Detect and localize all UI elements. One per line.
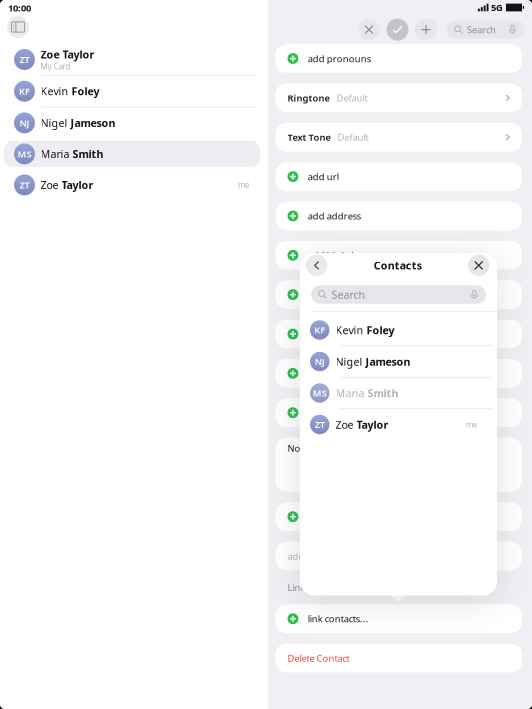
staticText: NJ bbox=[19, 117, 29, 129]
staticText: Zoe Taylor bbox=[40, 47, 94, 62]
button[interactable]: KF bbox=[0, 76, 264, 107]
staticText: add to emergency contacts bbox=[287, 550, 403, 562]
staticText: MS bbox=[17, 148, 31, 160]
button[interactable]: add birthday bbox=[275, 241, 522, 270]
button[interactable]: add social profile bbox=[275, 359, 522, 388]
button[interactable]: add url bbox=[275, 162, 522, 191]
staticText: Kevin Foley bbox=[40, 84, 99, 98]
staticText: add instant message bbox=[308, 406, 396, 419]
staticText: My Card bbox=[40, 61, 70, 72]
button[interactable]: add instant message bbox=[275, 398, 522, 427]
staticText: Zoe Taylor bbox=[335, 417, 388, 432]
button[interactable]: add to emergency contacts bbox=[275, 542, 522, 570]
staticText: ZT bbox=[315, 418, 325, 431]
staticText: Search bbox=[467, 23, 496, 36]
button[interactable]: Back bbox=[306, 255, 327, 276]
staticText: NJ bbox=[315, 355, 325, 368]
button[interactable]: Text Tone bbox=[275, 123, 522, 152]
button[interactable]: KF bbox=[300, 315, 497, 345]
staticText: 10:00 bbox=[8, 2, 31, 14]
staticText: Contacts bbox=[374, 258, 422, 272]
button[interactable]: MS bbox=[0, 138, 264, 169]
staticText: Nigel Jameson bbox=[335, 354, 410, 369]
button[interactable]: Ringtone bbox=[275, 84, 522, 112]
button[interactable]: Delete Contact bbox=[275, 644, 522, 672]
staticText: Nigel Jameson bbox=[40, 116, 115, 130]
staticText: 5G bbox=[491, 1, 503, 14]
button[interactable]: Search bbox=[446, 21, 525, 39]
button[interactable]: ZT bbox=[300, 409, 497, 440]
staticText: add birthday bbox=[308, 249, 364, 261]
button[interactable]: link contacts... bbox=[275, 604, 522, 633]
button[interactable]: NJ bbox=[0, 107, 264, 138]
button[interactable]: MS bbox=[300, 378, 497, 408]
staticText: Notes bbox=[287, 442, 312, 454]
staticText: add pronouns bbox=[308, 52, 371, 65]
button[interactable]: NJ bbox=[300, 346, 497, 377]
staticText: Maria Smith bbox=[335, 386, 398, 400]
staticText: add address bbox=[308, 210, 361, 222]
staticText: me bbox=[238, 180, 250, 190]
staticText: me bbox=[466, 419, 478, 430]
button[interactable]: Show sidebar bbox=[7, 16, 29, 38]
staticText: ZT bbox=[19, 53, 29, 66]
button[interactable]: Cancel bbox=[358, 19, 380, 41]
staticText: Delete Contact bbox=[287, 652, 349, 664]
staticText: Default bbox=[337, 131, 368, 143]
staticText: Linked Contacts bbox=[287, 581, 355, 594]
staticText: add url bbox=[308, 170, 339, 183]
staticText: Ringtone bbox=[287, 92, 329, 104]
button[interactable]: add field bbox=[275, 502, 522, 531]
staticText: add date bbox=[308, 288, 346, 301]
button[interactable]: Search bbox=[311, 285, 486, 304]
staticText: add related name bbox=[308, 328, 384, 340]
button[interactable]: Done bbox=[386, 19, 408, 41]
button[interactable]: add date bbox=[275, 280, 522, 309]
staticText: KF bbox=[314, 324, 325, 336]
button[interactable]: add address bbox=[275, 202, 522, 230]
staticText: link contacts... bbox=[308, 613, 369, 625]
button[interactable]: Add bbox=[415, 19, 437, 41]
staticText: ZT bbox=[19, 179, 29, 191]
button[interactable]: add related name bbox=[275, 320, 522, 348]
staticText: Kevin Foley bbox=[335, 323, 394, 337]
button[interactable]: Close bbox=[468, 255, 489, 276]
button[interactable]: ZT bbox=[0, 169, 264, 200]
button[interactable]: ZT bbox=[0, 44, 264, 75]
staticText: MS bbox=[313, 387, 327, 399]
staticText: KF bbox=[19, 85, 30, 97]
staticText: Text Tone bbox=[287, 131, 330, 143]
button[interactable]: Notes bbox=[275, 438, 522, 492]
staticText: Zoe Taylor bbox=[40, 178, 93, 192]
staticText: Search bbox=[331, 287, 365, 302]
staticText: Default bbox=[336, 92, 367, 104]
button[interactable]: add pronouns bbox=[275, 44, 522, 73]
staticText: add social profile bbox=[308, 367, 381, 380]
staticText: Maria Smith bbox=[40, 147, 103, 161]
